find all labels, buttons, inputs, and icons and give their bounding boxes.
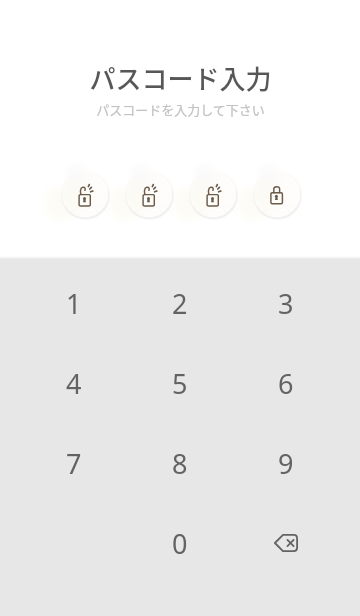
button[interactable]: 9 bbox=[233, 423, 339, 503]
staticText: 9 bbox=[278, 445, 294, 482]
button[interactable]: 8 bbox=[127, 423, 233, 503]
button[interactable]: 6 bbox=[233, 343, 339, 423]
button[interactable]: 2 bbox=[127, 263, 233, 343]
staticText: 3 bbox=[278, 285, 294, 322]
staticText: 0 bbox=[172, 525, 188, 562]
button[interactable]: 5 bbox=[127, 343, 233, 423]
staticText: 2 bbox=[172, 285, 188, 322]
staticText: 5 bbox=[172, 365, 188, 402]
staticText: パスコードを入力して下さい bbox=[96, 100, 265, 119]
staticText: 8 bbox=[172, 445, 188, 482]
staticText: 4 bbox=[66, 365, 82, 402]
staticText: 1 bbox=[66, 285, 82, 322]
button[interactable]: 0 bbox=[127, 503, 233, 583]
button[interactable]: 7 bbox=[21, 423, 127, 503]
button[interactable]: 4 bbox=[21, 343, 127, 423]
staticText: パスコード入力 bbox=[89, 59, 272, 97]
button[interactable]: 3 bbox=[233, 263, 339, 343]
button[interactable]: 1 bbox=[21, 263, 127, 343]
staticText: 7 bbox=[66, 445, 82, 482]
other: Backspace bbox=[274, 534, 298, 552]
staticText: 6 bbox=[278, 365, 294, 402]
button[interactable]: Backspace bbox=[233, 503, 339, 583]
